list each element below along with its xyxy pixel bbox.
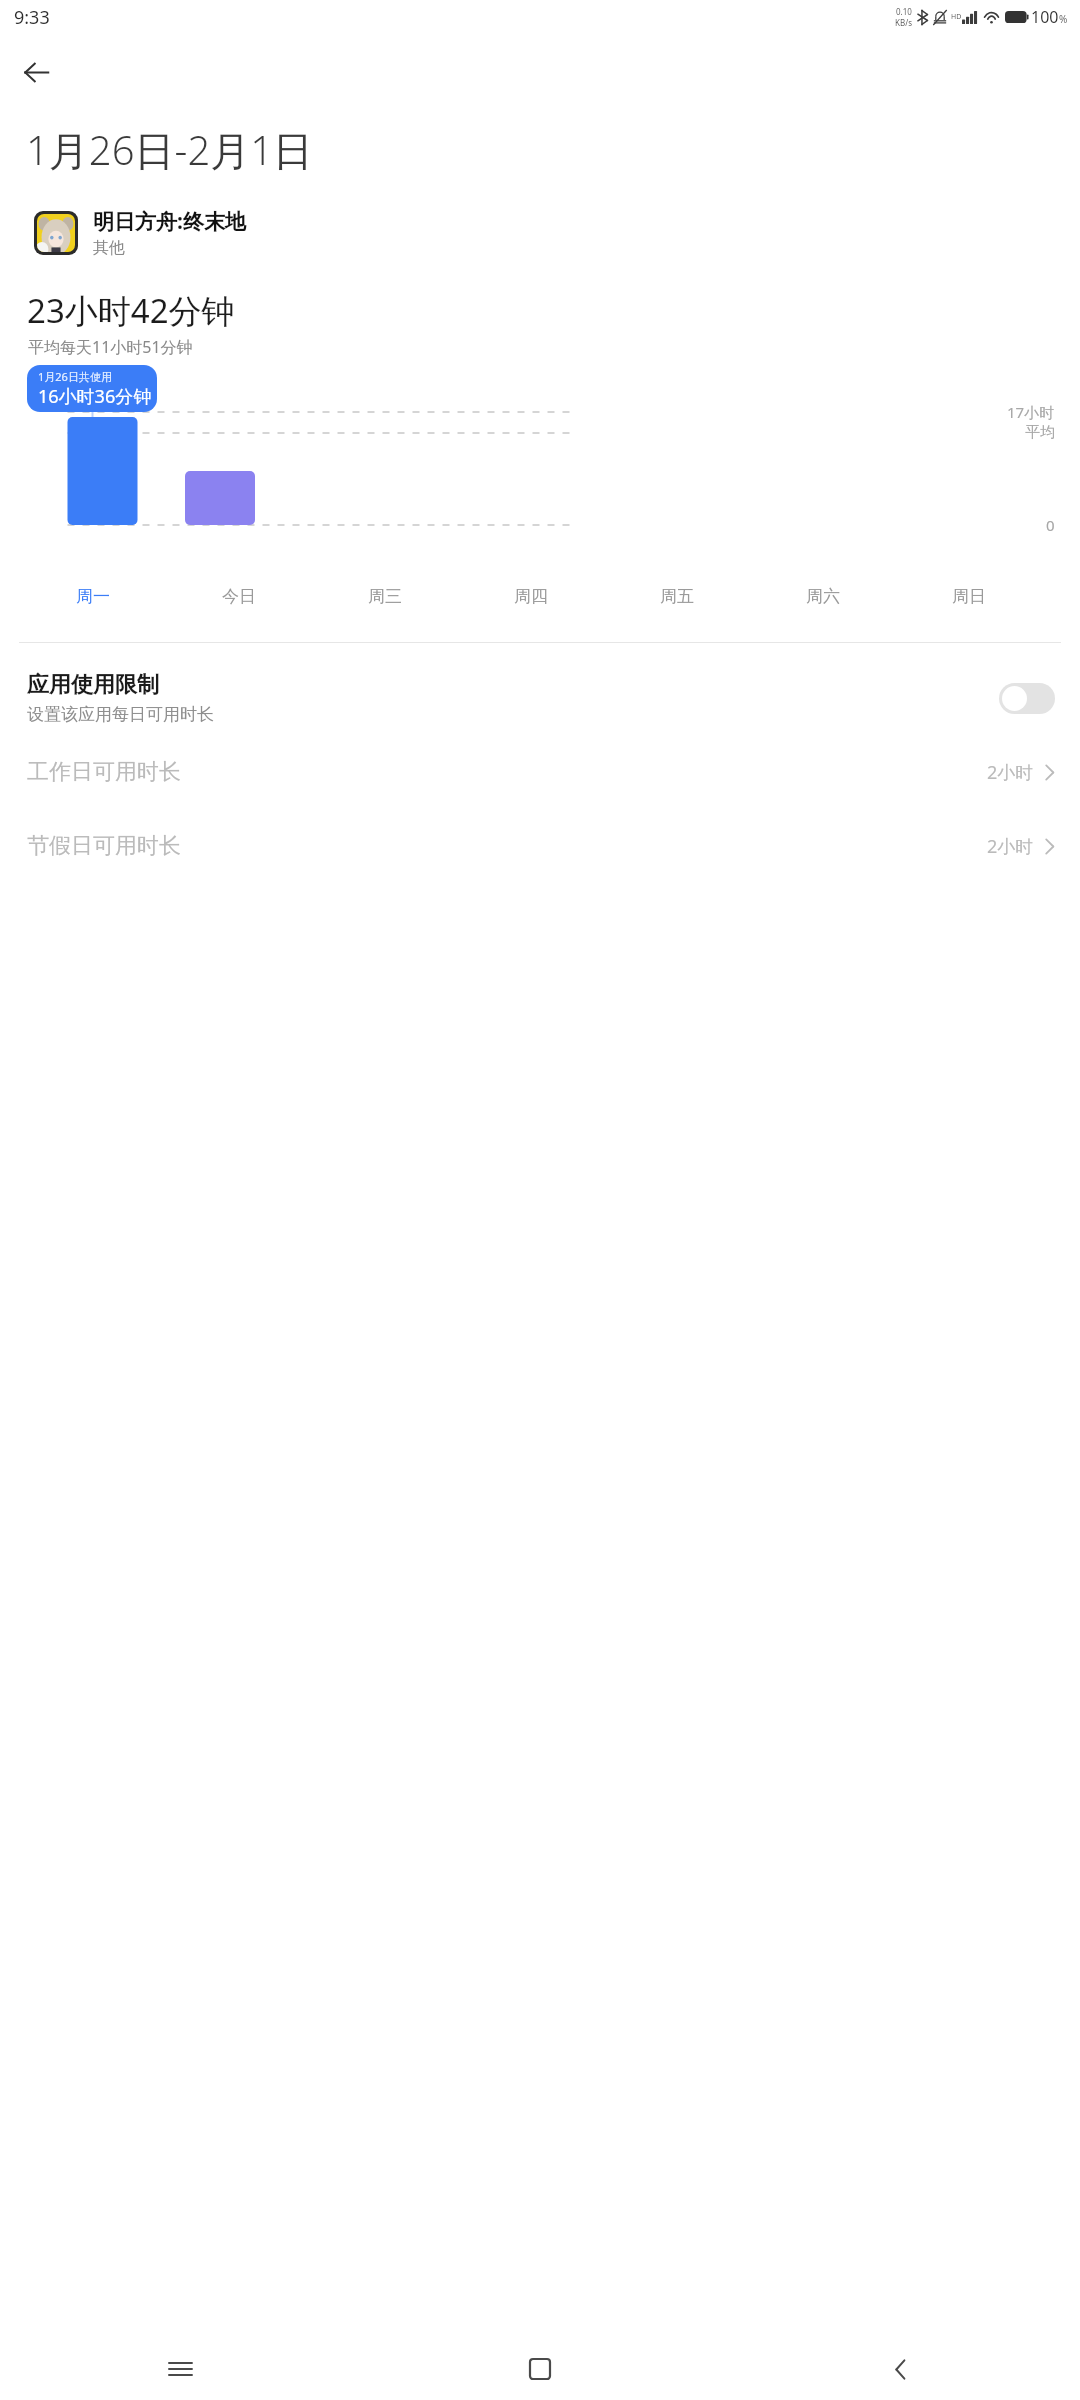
staticText: 周日 (952, 586, 986, 607)
staticText: 0.10 (896, 6, 912, 17)
button[interactable]: 周六 (750, 579, 896, 614)
staticText: 节假日可用时长 (27, 832, 987, 860)
staticText: 平均 (1025, 423, 1055, 442)
staticText: 周六 (806, 586, 840, 607)
button[interactable]: 周四 (458, 579, 604, 614)
staticText: 9:33 (14, 5, 50, 30)
button[interactable]: 周五 (604, 579, 750, 614)
staticText: 周四 (514, 586, 548, 607)
staticText: 23小时42分钟 (27, 288, 235, 333)
button[interactable]: 1月26日共使用 (27, 365, 157, 412)
button[interactable]: Home (360, 2338, 720, 2400)
staticText: 2小时 (987, 760, 1034, 785)
staticText: 1月26日-2月1日 (26, 122, 314, 177)
staticText: 其他 (93, 238, 125, 258)
staticText: 今日 (222, 586, 256, 607)
staticText: 100 (1031, 6, 1059, 28)
button[interactable]: 节假日可用时长 (0, 819, 1080, 873)
staticText: 16小时36分钟 (38, 384, 152, 409)
button[interactable]: 应用使用限制开关 (999, 683, 1055, 714)
button[interactable]: 今日 (166, 579, 312, 614)
button[interactable]: 明日方舟:终末地 (0, 207, 1080, 258)
staticText: 设置该应用每日可用时长 (27, 704, 214, 725)
staticText: 周三 (368, 586, 402, 607)
button[interactable]: Recents (0, 2338, 360, 2400)
staticText: 周五 (660, 586, 694, 607)
staticText: 应用使用限制 (27, 671, 159, 699)
button[interactable]: 周一 (20, 579, 166, 614)
staticText: 明日方舟:终末地 (93, 207, 246, 236)
staticText: 1月26日共使用 (38, 369, 112, 384)
staticText: 周一 (76, 586, 110, 607)
staticText: KB/s (895, 17, 912, 28)
button[interactable]: 工作日可用时长 (0, 745, 1080, 799)
button[interactable]: 应用使用限制 (0, 667, 1080, 729)
button[interactable]: 周三 (312, 579, 458, 614)
button[interactable]: 周日 (896, 579, 1042, 614)
staticText: HD (951, 12, 962, 22)
button[interactable]: Back (8, 44, 64, 100)
staticText: 0 (1046, 515, 1055, 535)
staticText: % (1059, 12, 1068, 26)
staticText: 2小时 (987, 834, 1034, 859)
button[interactable]: Back (720, 2338, 1080, 2400)
staticText: 17小时 (1007, 402, 1055, 422)
staticText: 平均每天11小时51分钟 (28, 336, 193, 358)
staticText: 工作日可用时长 (27, 758, 987, 786)
